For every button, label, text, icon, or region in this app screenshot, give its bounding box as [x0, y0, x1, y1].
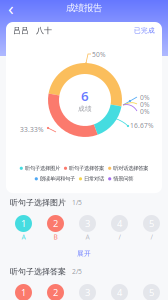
staticText: 0% — [140, 93, 150, 102]
staticText: 5 — [149, 217, 154, 230]
button[interactable]: 3 — [79, 284, 96, 300]
button[interactable]: 4 — [111, 215, 128, 240]
staticText: / — [150, 233, 152, 241]
staticText: 情景问答 — [113, 176, 133, 182]
staticText: 2/5 — [72, 267, 82, 276]
staticText: 听句子选择图片 — [25, 165, 60, 172]
button[interactable]: 3 — [79, 215, 96, 240]
button[interactable]: 2 — [47, 215, 64, 240]
button[interactable]: 5 — [143, 215, 160, 240]
staticText: 33.33% — [20, 125, 44, 134]
staticText: A — [21, 233, 25, 241]
staticText: 已完成 — [134, 26, 155, 35]
staticText: 2 — [53, 217, 58, 230]
staticText: B — [53, 233, 57, 241]
staticText: 4 — [117, 286, 122, 299]
staticText: 50% — [92, 50, 106, 59]
staticText: 1/5 — [72, 198, 82, 207]
staticText: 八十 — [36, 26, 52, 35]
staticText: 1 — [21, 217, 26, 230]
button[interactable]: 2 — [47, 284, 64, 300]
staticText: 朗读单词和句子 — [40, 176, 75, 182]
staticText: 听句子选择图片 — [10, 198, 66, 207]
staticText: 0% — [140, 107, 150, 116]
staticText: 成绩 — [78, 105, 92, 113]
staticText: 0% — [140, 100, 150, 109]
staticText: 6 — [81, 87, 89, 105]
staticText: 3 — [85, 217, 90, 230]
staticText: 听句子选择答案 — [10, 267, 66, 276]
button[interactable]: 1 — [15, 215, 32, 240]
staticText: 16.67% — [130, 121, 154, 130]
staticText: 4 — [117, 217, 122, 230]
button[interactable]: 1 — [15, 284, 32, 300]
button[interactable]: 4 — [111, 284, 128, 300]
staticText: / — [118, 233, 120, 241]
staticText: 成绩报告 — [66, 2, 102, 14]
staticText: 1 — [21, 286, 26, 299]
staticText: 吕吕 — [13, 26, 29, 35]
staticText: 5 — [149, 286, 154, 299]
staticText: ‹ — [8, 0, 14, 20]
staticText: 听句子选择答案 — [69, 165, 104, 172]
staticText: 展开 — [77, 249, 91, 258]
staticText: 2 — [53, 286, 58, 299]
button[interactable]: Back — [3, 0, 19, 16]
button[interactable]: 5 — [143, 284, 160, 300]
staticText: 听对话选择答案 — [113, 165, 148, 172]
staticText: 3 — [85, 286, 90, 299]
staticText: A — [85, 233, 89, 241]
button[interactable]: 展开 — [0, 248, 168, 259]
staticText: 日常对话 — [84, 176, 104, 182]
